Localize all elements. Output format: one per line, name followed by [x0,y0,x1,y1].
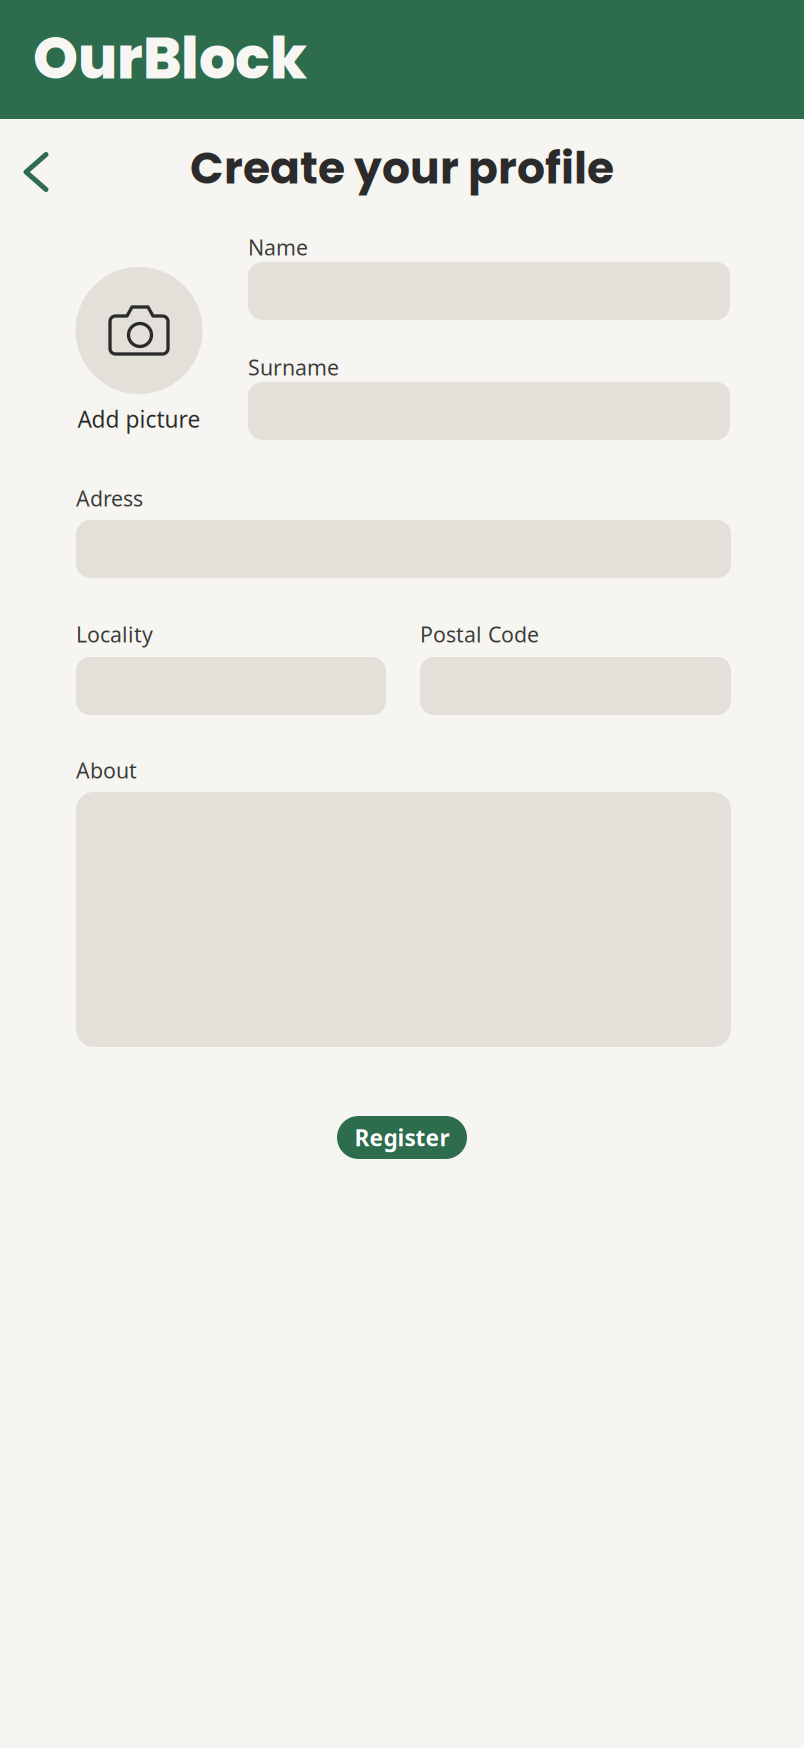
staticText: Register [354,1122,449,1152]
staticText: Adress [76,484,143,512]
button[interactable]: Surname [248,360,730,440]
staticText: Add picture [77,404,200,434]
staticText: Postal Code [420,620,539,648]
staticText: Name [248,233,308,261]
button[interactable]: Adress [76,491,731,578]
button[interactable]: Add picture [24,267,254,432]
staticText: Create your profile [190,137,614,199]
button[interactable]: Postal Code [420,627,731,715]
button[interactable]: Register [337,1116,467,1159]
button[interactable]: Back [4,140,68,204]
button[interactable]: About [76,763,731,1047]
staticText: Surname [248,353,339,381]
staticText: About [76,756,137,784]
staticText: OurBlock [33,18,307,99]
button[interactable]: Name [248,240,730,320]
staticText: Locality [76,620,153,648]
button[interactable]: Locality [76,627,386,715]
